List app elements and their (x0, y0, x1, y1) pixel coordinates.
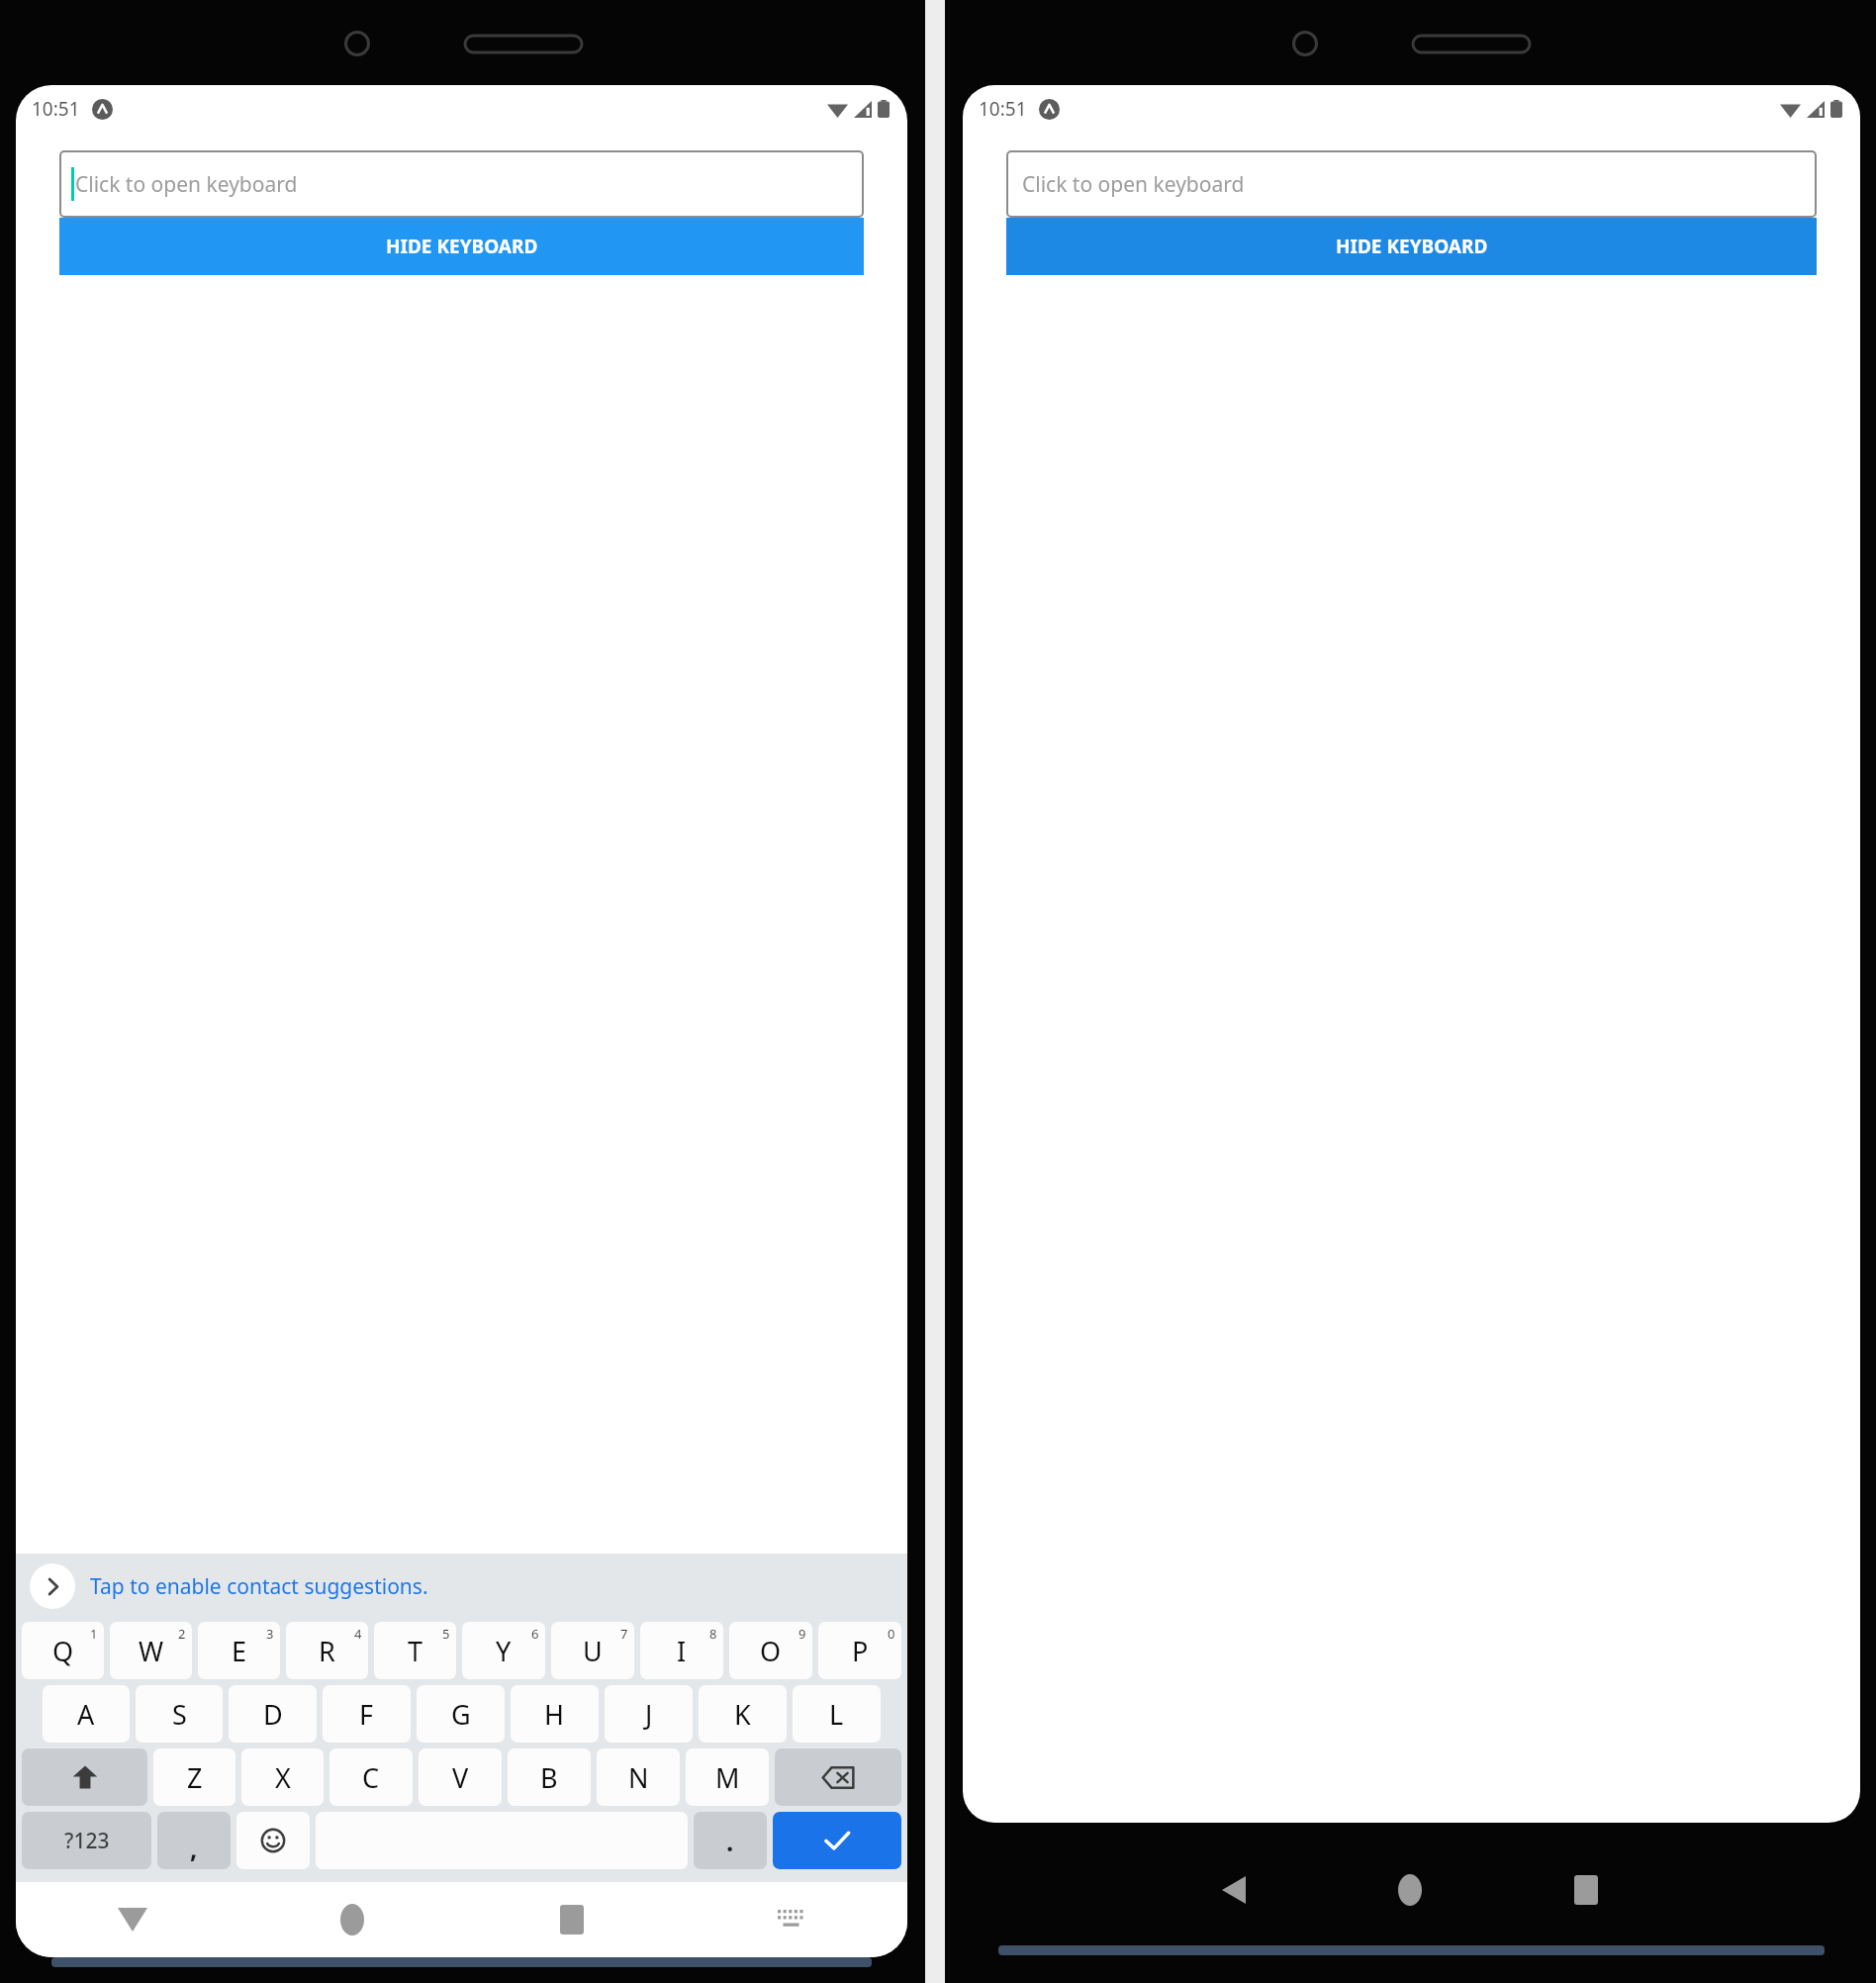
button[interactable]: F (323, 1685, 411, 1743)
button[interactable]: T (374, 1622, 456, 1679)
button[interactable]: M (686, 1748, 769, 1806)
button[interactable]: P (818, 1622, 901, 1679)
staticText: C (362, 1759, 380, 1796)
staticText: Click to open keyboard (1022, 170, 1245, 199)
button[interactable]: Click to open keyboard (59, 150, 864, 218)
staticText: Click to open keyboard (75, 170, 298, 199)
button[interactable]: ?123 (22, 1812, 151, 1869)
button[interactable]: Q (22, 1622, 104, 1679)
button[interactable]: H (511, 1685, 599, 1743)
staticText: 5 (442, 1625, 450, 1643)
button[interactable]: N (597, 1748, 680, 1806)
button[interactable]: L (793, 1685, 881, 1743)
button[interactable]: Switch keyboard (682, 1882, 901, 1957)
button[interactable]: V (419, 1748, 502, 1806)
staticText: 0 (888, 1625, 895, 1643)
button[interactable]: C (329, 1748, 413, 1806)
button[interactable]: Enter (773, 1812, 901, 1869)
staticText: M (715, 1759, 740, 1796)
button[interactable]: X (241, 1748, 324, 1806)
button[interactable]: Back (1146, 1844, 1322, 1936)
staticText: S (172, 1696, 187, 1733)
staticText: T (408, 1633, 423, 1669)
staticText: K (734, 1696, 751, 1733)
staticText: N (628, 1759, 649, 1796)
staticText: D (263, 1696, 283, 1733)
staticText: 4 (354, 1625, 362, 1643)
button[interactable]: Backspace (775, 1748, 901, 1806)
button[interactable]: R (286, 1622, 368, 1679)
staticText: A (77, 1696, 95, 1733)
staticText: B (540, 1759, 558, 1796)
staticText: HIDE KEYBOARD (1336, 234, 1488, 259)
button[interactable]: Recents (462, 1882, 682, 1957)
button[interactable]: HIDE KEYBOARD (1006, 218, 1817, 275)
button[interactable]: Y (462, 1622, 545, 1679)
button[interactable]: HIDE KEYBOARD (59, 218, 864, 275)
button[interactable]: K (699, 1685, 787, 1743)
button[interactable]: G (417, 1685, 505, 1743)
staticText: 3 (266, 1625, 274, 1643)
staticText: 8 (709, 1625, 717, 1643)
staticText: 6 (531, 1625, 539, 1643)
button[interactable]: E (198, 1622, 280, 1679)
staticText: Q (52, 1633, 74, 1669)
button[interactable]: D (229, 1685, 317, 1743)
button[interactable]: Tap to enable contact suggestions. (16, 1554, 907, 1619)
staticText: L (829, 1696, 844, 1733)
button[interactable]: U (551, 1622, 634, 1679)
staticText: 9 (798, 1625, 806, 1643)
staticText: X (275, 1759, 291, 1796)
staticText: . (726, 1824, 734, 1858)
staticText: R (319, 1633, 335, 1669)
staticText: Z (187, 1759, 203, 1796)
staticText: 7 (620, 1625, 628, 1643)
button[interactable]: Shift (22, 1748, 147, 1806)
button[interactable]: S (136, 1685, 223, 1743)
staticText: 1 (90, 1625, 98, 1643)
staticText: Y (496, 1633, 512, 1669)
staticText: U (583, 1633, 603, 1669)
staticText: I (677, 1633, 687, 1669)
staticText: H (544, 1696, 565, 1733)
staticText: , (190, 1831, 198, 1865)
button[interactable]: I (640, 1622, 723, 1679)
staticText: J (645, 1696, 653, 1733)
button[interactable]: O (729, 1622, 812, 1679)
button[interactable]: B (508, 1748, 591, 1806)
staticText: F (359, 1696, 374, 1733)
button[interactable]: Click to open keyboard (1006, 150, 1817, 218)
staticText: 10:51 (979, 96, 1027, 122)
staticText: P (852, 1633, 869, 1669)
button[interactable]: Hide keyboard (22, 1882, 242, 1957)
staticText: ?123 (64, 1827, 110, 1855)
button[interactable]: Comma (157, 1812, 231, 1869)
staticText: 10:51 (32, 96, 80, 122)
staticText: 2 (178, 1625, 186, 1643)
staticText: O (760, 1633, 782, 1669)
staticText: HIDE KEYBOARD (386, 234, 538, 259)
staticText: E (232, 1633, 247, 1669)
button[interactable]: Period (694, 1812, 767, 1869)
button[interactable]: A (43, 1685, 130, 1743)
staticText: W (139, 1633, 164, 1669)
staticText: Tap to enable contact suggestions. (90, 1572, 428, 1601)
button[interactable]: Recents (1498, 1844, 1674, 1936)
staticText: G (451, 1696, 471, 1733)
button[interactable]: Home (1322, 1844, 1498, 1936)
button[interactable]: Z (153, 1748, 235, 1806)
button[interactable]: Home (242, 1882, 462, 1957)
staticText: V (452, 1759, 469, 1796)
button[interactable]: W (110, 1622, 192, 1679)
button[interactable]: Emoji (236, 1812, 310, 1869)
button[interactable]: J (605, 1685, 693, 1743)
